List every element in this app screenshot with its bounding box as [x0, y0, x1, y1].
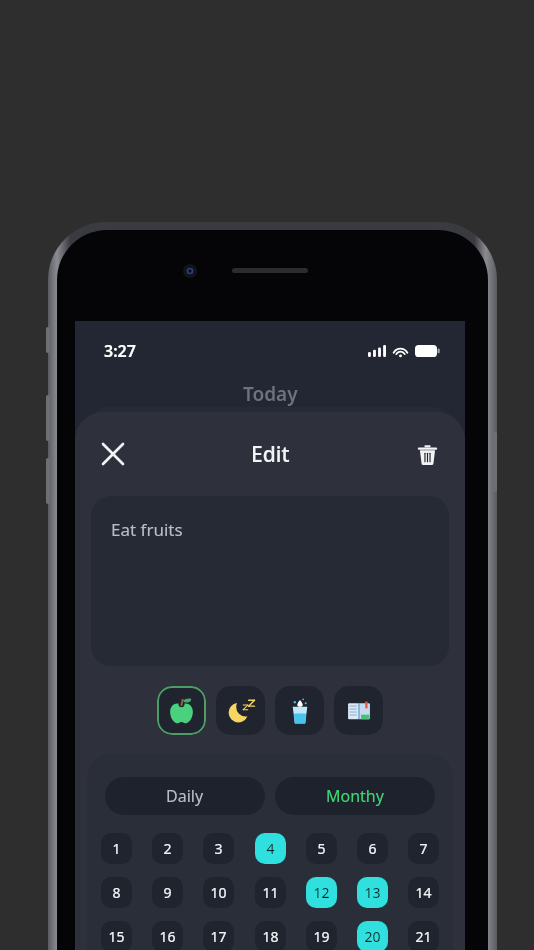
button[interactable]: 20 — [357, 921, 388, 950]
button[interactable]: Habit icon — [157, 686, 206, 735]
button[interactable]: 19 — [306, 921, 337, 950]
button[interactable]: 4 — [255, 833, 286, 864]
button[interactable]: 5 — [306, 833, 337, 864]
staticText: 5 — [317, 839, 326, 858]
staticText: 19 — [313, 927, 330, 946]
button[interactable]: 15 — [101, 921, 132, 950]
button[interactable]: 21 — [408, 921, 439, 950]
staticText: 10 — [210, 883, 227, 902]
staticText: 21 — [415, 927, 432, 946]
button[interactable]: 2 — [152, 833, 183, 864]
staticText: 9 — [163, 883, 172, 902]
staticText: Today — [243, 381, 298, 407]
button[interactable]: 6 — [357, 833, 388, 864]
staticText: 18 — [262, 927, 279, 946]
button[interactable]: 18 — [255, 921, 286, 950]
button[interactable]: 16 — [152, 921, 183, 950]
button[interactable]: Delete — [401, 428, 453, 480]
staticText: Eat fruits — [111, 518, 183, 541]
button[interactable]: Daily — [105, 777, 265, 815]
button[interactable]: 14 — [408, 877, 439, 908]
button[interactable]: Habit icon — [334, 686, 383, 735]
staticText: 6 — [368, 839, 377, 858]
staticText: 17 — [210, 927, 227, 946]
staticText: 15 — [108, 927, 125, 946]
staticText: 20 — [364, 927, 381, 946]
button[interactable]: 1 — [101, 833, 132, 864]
button[interactable]: 8 — [101, 877, 132, 908]
staticText: 4 — [266, 839, 275, 858]
button[interactable]: Eat fruits — [91, 496, 449, 666]
button[interactable]: 13 — [357, 877, 388, 908]
button[interactable]: Habit icon — [275, 686, 324, 735]
staticText: 3 — [214, 839, 223, 858]
staticText: 7 — [419, 839, 428, 858]
button[interactable]: Close — [87, 428, 139, 480]
staticText: 1 — [112, 839, 121, 858]
button[interactable]: 3 — [203, 833, 234, 864]
staticText: 13 — [364, 883, 381, 902]
staticText: 8 — [112, 883, 121, 902]
staticText: 11 — [262, 883, 279, 902]
staticText: 16 — [159, 927, 176, 946]
button[interactable]: 11 — [255, 877, 286, 908]
button[interactable]: 17 — [203, 921, 234, 950]
button[interactable]: 12 — [306, 877, 337, 908]
button[interactable]: 7 — [408, 833, 439, 864]
staticText: 14 — [415, 883, 432, 902]
button[interactable]: Habit icon — [216, 686, 265, 735]
staticText: Edit — [251, 440, 290, 469]
staticText: 3:27 — [104, 340, 136, 362]
staticText: Monthy — [326, 785, 384, 807]
staticText: 2 — [163, 839, 172, 858]
staticText: Daily — [166, 785, 204, 807]
button[interactable]: 9 — [152, 877, 183, 908]
button[interactable]: 10 — [203, 877, 234, 908]
staticText: 12 — [313, 883, 330, 902]
button[interactable]: Monthy — [275, 777, 435, 815]
